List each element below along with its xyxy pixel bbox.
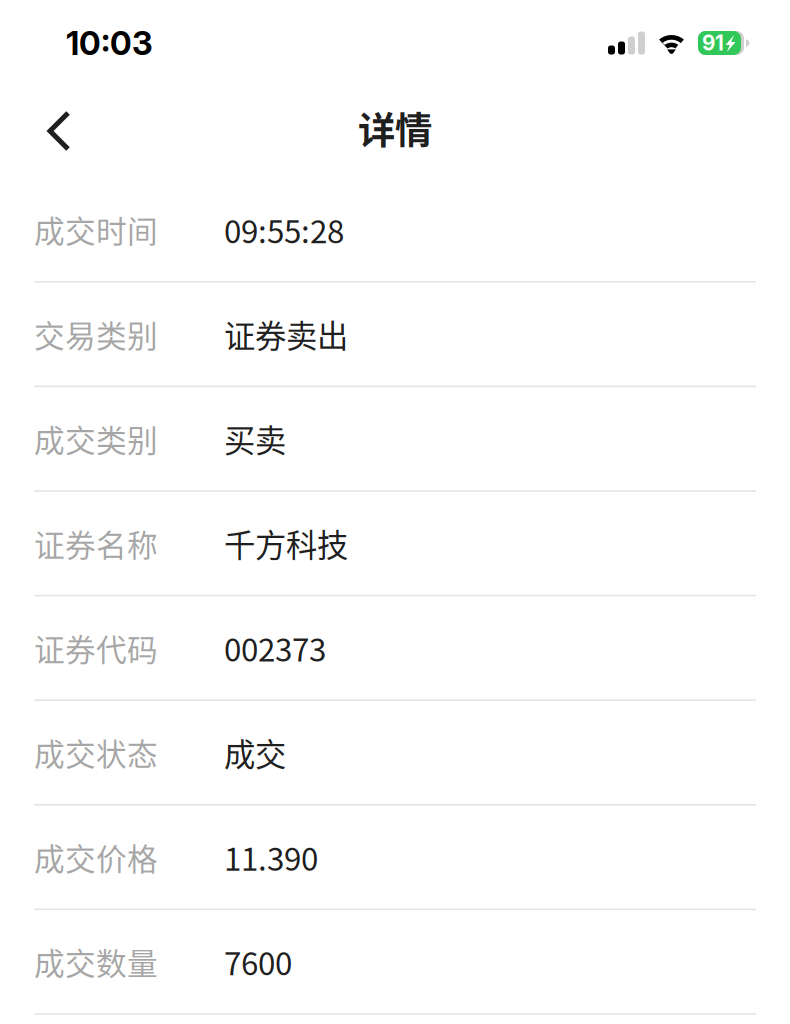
button[interactable]: 成交状态 (0, 701, 790, 806)
staticText: 91 (702, 30, 724, 55)
staticText: 11.390 (224, 834, 318, 880)
staticText: 成交数量 (34, 939, 158, 984)
staticText: 证券卖出 (224, 311, 348, 357)
staticText: 证券名称 (34, 521, 158, 565)
staticText: 09:55:28 (224, 207, 344, 252)
button[interactable]: 证券名称 (0, 492, 790, 596)
staticText: 详情 (358, 101, 432, 155)
staticText: 成交价格 (34, 835, 158, 879)
staticText: 交易类别 (34, 312, 158, 356)
staticText: 成交时间 (34, 207, 158, 252)
staticText: 10:03 (66, 23, 153, 63)
staticText: 成交状态 (34, 730, 158, 775)
button[interactable]: 成交数量 (0, 910, 790, 1015)
staticText: 证券代码 (34, 626, 158, 670)
staticText: 买卖 (224, 416, 286, 461)
button[interactable]: 成交时间 (0, 178, 790, 283)
button[interactable]: 证券代码 (0, 596, 790, 701)
staticText: 千方科技 (224, 521, 348, 566)
button[interactable]: 交易类别 (0, 283, 790, 387)
button[interactable]: 成交类别 (0, 387, 790, 492)
staticText: 002373 (224, 625, 326, 671)
staticText: 成交类别 (34, 416, 158, 461)
button[interactable]: 返回 (0, 88, 71, 168)
button[interactable]: 成交价格 (0, 806, 790, 910)
staticText: 7600 (224, 939, 292, 984)
staticText: 成交 (224, 730, 286, 775)
